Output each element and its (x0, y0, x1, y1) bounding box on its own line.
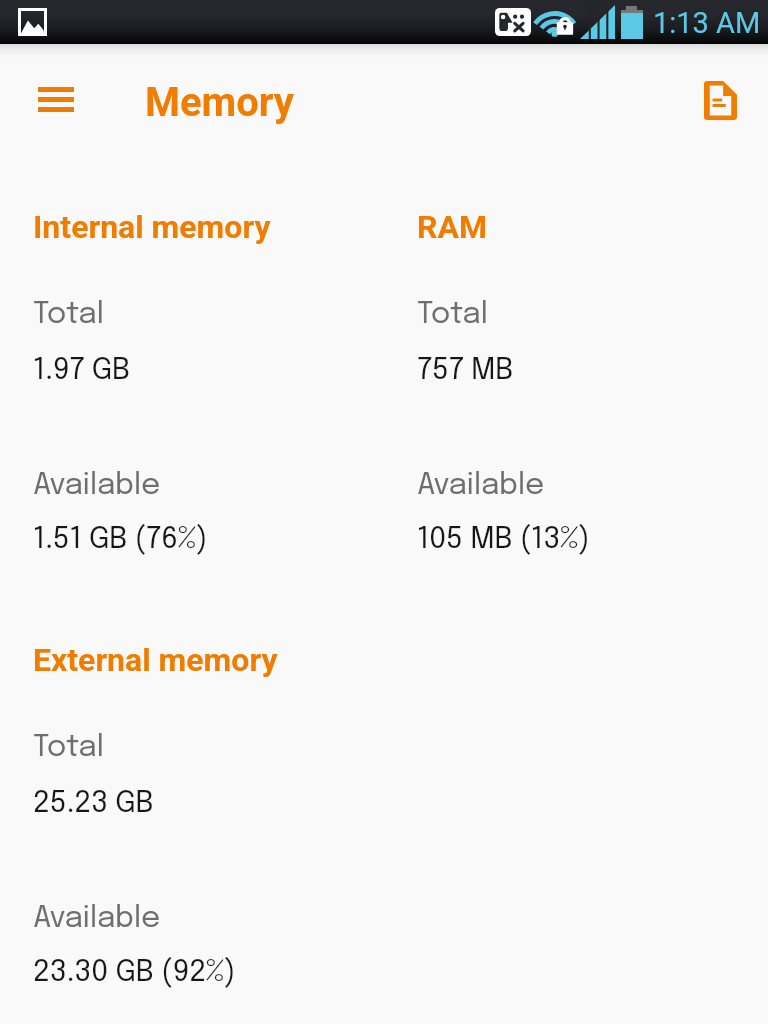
staticText: Total (417, 299, 488, 330)
staticText: 1:13 AM (653, 6, 761, 40)
staticText: Memory (145, 79, 294, 126)
staticText: 23.30 GB (92%) (33, 957, 236, 988)
staticText: 1.97 GB (33, 355, 131, 386)
staticText: Total (33, 299, 104, 330)
staticText: Total (33, 732, 104, 763)
button[interactable]: Report (690, 70, 750, 130)
button[interactable]: Open navigation drawer (26, 72, 86, 132)
staticText: Internal memory (33, 208, 271, 246)
staticText: 25.23 GB (33, 788, 154, 819)
staticText: 757 MB (417, 355, 514, 386)
staticText: Available (33, 903, 161, 934)
staticText: Available (417, 470, 545, 501)
staticText: 105 MB (13%) (417, 524, 590, 555)
staticText: 1.51 GB (76%) (33, 524, 208, 555)
staticText: External memory (33, 641, 278, 679)
staticText: RAM (417, 208, 488, 246)
staticText: Available (33, 470, 161, 501)
